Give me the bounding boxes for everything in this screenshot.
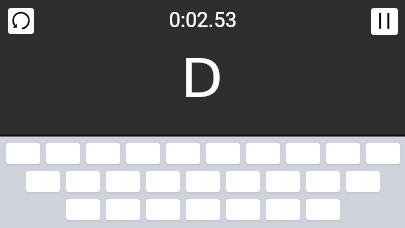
button[interactable]: Key <box>106 171 140 192</box>
button[interactable]: Key <box>266 199 300 220</box>
button[interactable]: Key <box>326 143 360 164</box>
button[interactable]: Key <box>246 143 280 164</box>
staticText: 0:02.53 <box>169 8 237 32</box>
button[interactable]: Key <box>266 171 300 192</box>
button[interactable]: Key <box>186 199 220 220</box>
button[interactable]: Restart <box>8 8 34 34</box>
button[interactable]: Key <box>46 143 80 164</box>
button[interactable]: Key <box>146 199 180 220</box>
button[interactable]: Key <box>146 171 180 192</box>
button[interactable]: Key <box>286 143 320 164</box>
button[interactable]: Key <box>366 143 400 164</box>
button[interactable]: Key <box>66 199 100 220</box>
button[interactable]: Key <box>26 171 60 192</box>
button[interactable]: Pause <box>371 8 398 35</box>
staticText: D <box>181 47 223 110</box>
button[interactable]: Key <box>86 143 120 164</box>
button[interactable]: Key <box>66 171 100 192</box>
button[interactable]: Key <box>226 199 260 220</box>
button[interactable]: Key <box>186 171 220 192</box>
button[interactable]: Key <box>166 143 200 164</box>
button[interactable]: Key <box>126 143 160 164</box>
button[interactable]: Key <box>346 171 380 192</box>
button[interactable]: Key <box>226 171 260 192</box>
button[interactable]: Key <box>206 143 240 164</box>
button[interactable]: Key <box>306 199 340 220</box>
button[interactable]: Key <box>6 143 40 164</box>
button[interactable]: Key <box>306 171 340 192</box>
button[interactable]: Key <box>106 199 140 220</box>
